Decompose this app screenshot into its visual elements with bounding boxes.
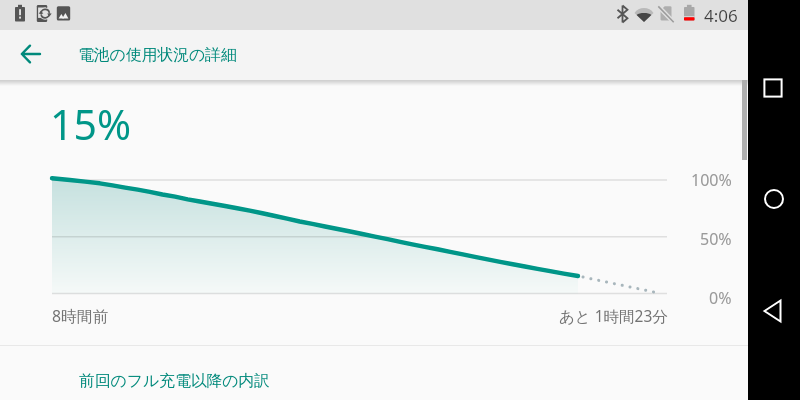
staticText: あと 1時間23分 — [559, 305, 668, 326]
staticText: 100% — [691, 169, 732, 191]
staticText: 15% — [50, 96, 131, 152]
staticText: 電池の使用状況の詳細 — [78, 45, 237, 65]
button[interactable]: Recent apps — [751, 66, 795, 110]
staticText: 前回のフル充電以降の内訳 — [79, 371, 271, 391]
staticText: 4:06 — [704, 4, 738, 27]
staticText: 50% — [700, 228, 732, 250]
button[interactable]: Home — [752, 177, 796, 221]
button[interactable]: Back — [751, 289, 795, 333]
button[interactable]: Back — [7, 30, 55, 78]
button[interactable]: 前回のフル充電以降の内訳 — [0, 346, 748, 400]
staticText: 8時間前 — [52, 305, 109, 327]
staticText: 0% — [709, 287, 732, 309]
